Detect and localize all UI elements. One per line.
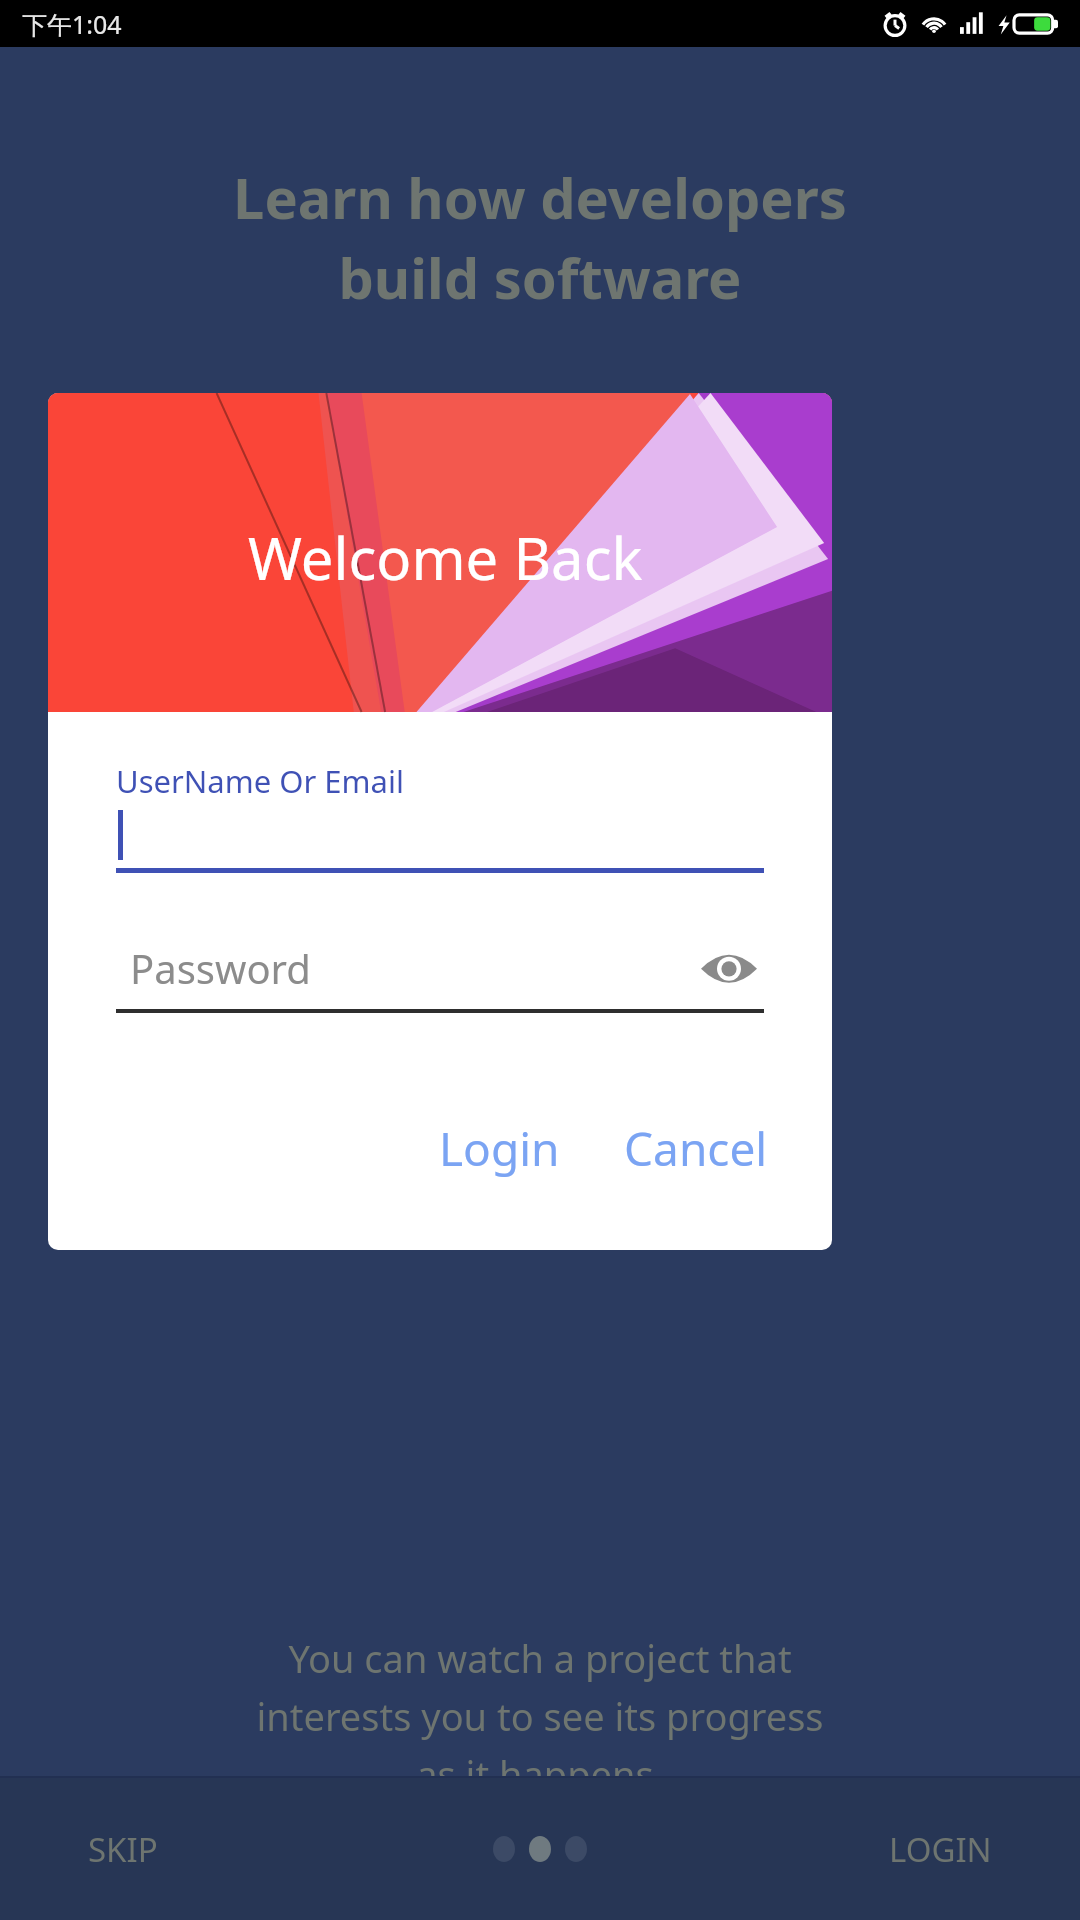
staticText: Password	[130, 941, 311, 995]
staticText: Login	[439, 1117, 560, 1180]
staticText: LOGIN	[889, 1827, 992, 1872]
staticText: Cancel	[624, 1117, 768, 1180]
button[interactable]: Password	[116, 933, 764, 1003]
button[interactable]	[116, 802, 764, 868]
staticText: UserName Or Email	[116, 760, 404, 802]
staticText: Learn how developers build software	[233, 159, 847, 315]
staticText: You can watch a project that interests y…	[256, 1632, 824, 1800]
staticText: Welcome Back	[248, 518, 643, 597]
button[interactable]: Login	[417, 1103, 582, 1194]
staticText: 下午1:04	[22, 7, 122, 41]
button[interactable]: LOGIN	[871, 1813, 1010, 1886]
staticText: SKIP	[88, 1827, 158, 1872]
button[interactable]: Show password	[694, 933, 764, 1003]
button[interactable]: Cancel	[602, 1103, 790, 1194]
button[interactable]: SKIP	[70, 1813, 176, 1886]
